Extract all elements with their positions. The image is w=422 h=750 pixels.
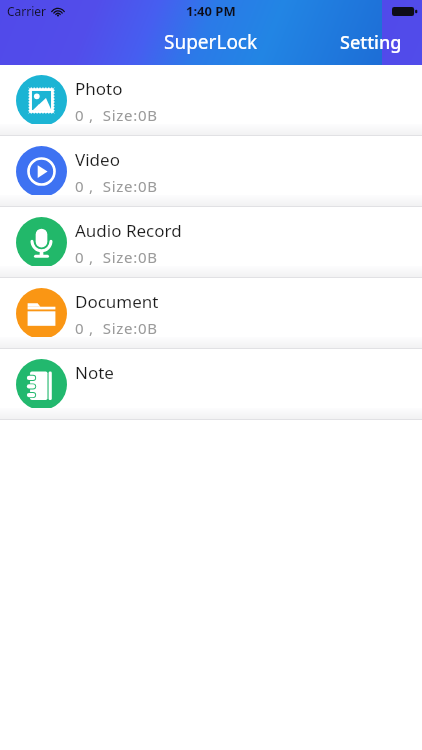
button[interactable]: Document	[0, 278, 422, 349]
staticText: Carrier	[7, 3, 47, 19]
staticText: Audio Record	[75, 219, 182, 242]
staticText: SuperLock	[164, 29, 258, 55]
staticText: Document	[75, 290, 159, 313]
staticText: 1:40 PM	[186, 2, 236, 20]
staticText: 0 , Size:0B	[75, 318, 158, 338]
button[interactable]: Photo	[0, 65, 422, 136]
button[interactable]: Video	[0, 136, 422, 207]
staticText: Photo	[75, 77, 123, 100]
staticText: Setting	[340, 30, 402, 55]
staticText: 0 , Size:0B	[75, 176, 158, 196]
staticText: Note	[75, 361, 114, 384]
button[interactable]: Setting	[340, 30, 422, 65]
staticText: 0 , Size:0B	[75, 105, 158, 125]
button[interactable]: Note	[0, 349, 422, 420]
staticText: 0 , Size:0B	[75, 247, 158, 267]
button[interactable]: Audio Record	[0, 207, 422, 278]
staticText: Video	[75, 148, 120, 171]
